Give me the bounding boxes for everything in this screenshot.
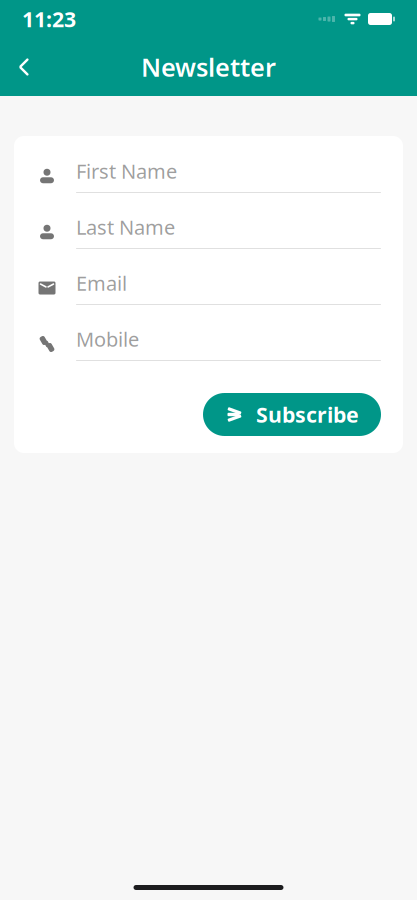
staticText: 11:23 xyxy=(22,5,76,33)
staticText: Newsletter xyxy=(141,50,276,84)
staticText: Mobile xyxy=(76,326,139,352)
button[interactable]: Last Name xyxy=(36,204,381,260)
staticText: Subscribe xyxy=(256,400,359,429)
staticText: First Name xyxy=(76,158,177,184)
button[interactable]: Subscribe xyxy=(203,393,381,436)
button[interactable]: First Name xyxy=(36,148,381,204)
staticText: Last Name xyxy=(76,214,175,240)
button[interactable]: Back xyxy=(2,45,46,89)
staticText: Email xyxy=(76,270,127,296)
button[interactable]: Email xyxy=(36,260,381,316)
button[interactable]: Mobile xyxy=(36,316,381,372)
